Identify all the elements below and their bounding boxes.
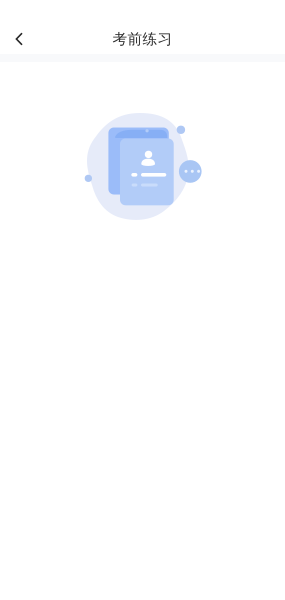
button[interactable]: Back	[0, 16, 38, 54]
staticText: 考前练习	[112, 30, 172, 48]
